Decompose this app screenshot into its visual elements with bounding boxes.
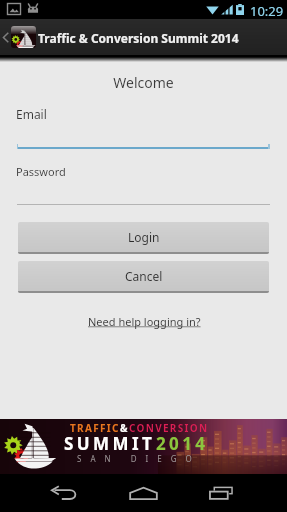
staticText: 2014: [156, 432, 209, 455]
staticText: Welcome: [0, 73, 287, 92]
button[interactable]: Back: [38, 481, 90, 505]
staticText: SAN DIEGO: [77, 453, 201, 464]
staticText: SUMMIT: [64, 432, 156, 455]
staticText: Cancel: [125, 268, 163, 284]
staticText: TRAFFIC: [70, 421, 120, 435]
staticText: Traffic & Conversion Summit 2014: [38, 30, 239, 46]
button[interactable]: Login: [18, 222, 269, 254]
other: Navigate up: [2, 32, 9, 43]
button[interactable]: TRAFFIC: [0, 419, 287, 474]
staticText: Password: [16, 164, 66, 179]
staticText: Login: [128, 229, 160, 245]
button[interactable]: Need help logging in?: [88, 314, 201, 329]
button[interactable]: Cancel: [18, 261, 269, 293]
staticText: CONVERSION: [129, 421, 209, 435]
staticText: 10:29: [250, 2, 284, 20]
button[interactable]: Recent apps: [195, 481, 247, 505]
button[interactable]: Home: [117, 481, 169, 505]
staticText: Email: [16, 106, 47, 122]
button[interactable]: Navigate up: [0, 19, 39, 55]
staticText: Need help logging in?: [88, 314, 201, 329]
staticText: &: [120, 421, 129, 435]
